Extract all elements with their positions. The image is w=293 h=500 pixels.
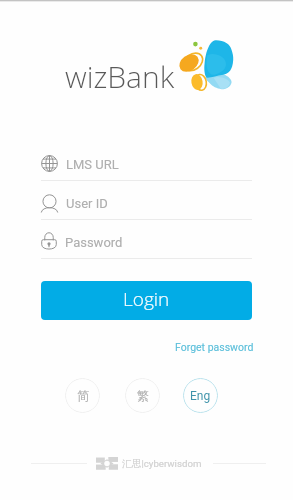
button[interactable]: 简 — [65, 378, 100, 413]
staticText: User ID — [66, 196, 108, 211]
staticText: Eng — [190, 389, 211, 403]
button[interactable]: User ID — [41, 181, 252, 220]
staticText: 繁 — [137, 388, 149, 403]
button[interactable]: Password — [41, 220, 252, 259]
staticText: Login — [123, 286, 170, 312]
staticText: 简 — [77, 388, 89, 403]
button[interactable]: LMS URL — [41, 142, 252, 181]
other: User ID — [41, 194, 58, 213]
other: Password — [41, 232, 57, 251]
button[interactable]: 繁 — [125, 378, 160, 413]
staticText: 汇思|cyberwisdom — [122, 458, 202, 470]
button[interactable]: Eng — [183, 378, 218, 413]
other: LMS URL — [41, 155, 58, 172]
button[interactable]: Forget password — [175, 341, 254, 353]
staticText: wizBank — [65, 56, 175, 97]
staticText: Forget password — [175, 341, 254, 353]
button[interactable]: Login — [41, 281, 252, 320]
staticText: Password — [65, 235, 123, 250]
staticText: LMS URL — [66, 157, 119, 172]
